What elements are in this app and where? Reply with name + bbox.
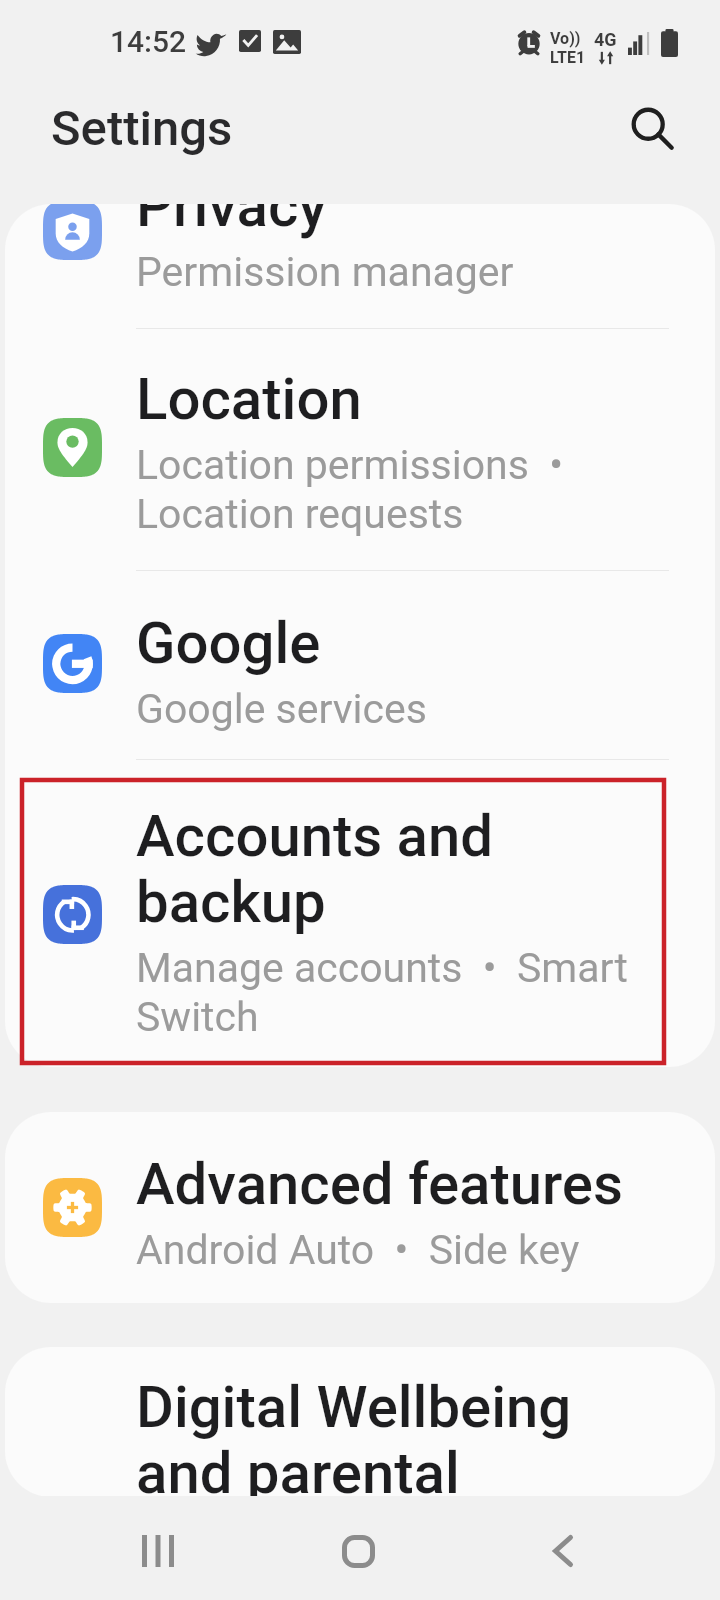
button[interactable]: Location	[5, 329, 715, 570]
staticText: Permission manager	[136, 247, 696, 296]
staticText: Settings	[51, 100, 233, 157]
button[interactable]: Privacy	[5, 204, 715, 328]
staticText: Digital Wellbeing and parental controls	[136, 1375, 669, 1497]
staticText: Vo))	[550, 29, 581, 48]
button[interactable]: Back	[508, 1499, 618, 1600]
staticText: Accounts and backup	[136, 804, 556, 936]
staticText: 4G	[594, 29, 617, 50]
button[interactable]: Advanced features	[5, 1112, 715, 1303]
button[interactable]: Search	[618, 95, 688, 165]
staticText: Location permissions • Location requests	[136, 440, 596, 538]
button[interactable]: Google	[5, 571, 715, 759]
button[interactable]: Digital Wellbeing and parental controls	[5, 1347, 715, 1497]
staticText: Android Auto • Side key	[136, 1225, 696, 1274]
staticText: Google services	[136, 684, 696, 733]
staticText: LTE1	[550, 48, 586, 67]
button[interactable]: Home	[303, 1499, 413, 1600]
button[interactable]: Accounts and backup	[5, 760, 715, 1067]
staticText: Manage accounts • Smart Switch	[136, 943, 646, 1041]
staticText: Advanced features	[136, 1152, 696, 1218]
staticText: Google	[136, 611, 696, 677]
staticText: Location	[136, 367, 696, 433]
button[interactable]: Recents	[102, 1499, 212, 1600]
staticText: 14:52	[110, 24, 187, 59]
staticText: Privacy	[136, 204, 696, 240]
